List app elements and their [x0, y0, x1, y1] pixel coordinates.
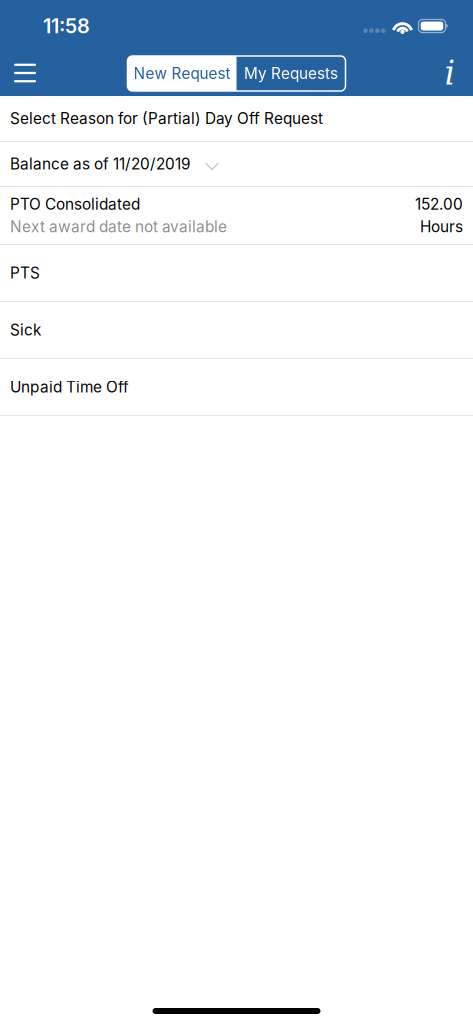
button[interactable]: Unpaid Time Off [0, 359, 473, 415]
button[interactable]: Information [428, 51, 472, 95]
button[interactable]: Select Reason for (Partial) Day Off Requ… [0, 96, 473, 141]
staticText: Balance as of 11/20/2019 [10, 155, 191, 173]
staticText: PTS [10, 264, 40, 282]
staticText: Unpaid Time Off [10, 378, 129, 396]
staticText: New Request [133, 64, 230, 83]
staticText: Next award date not available [10, 217, 227, 236]
staticText: My Requests [244, 64, 338, 83]
staticText: Select Reason for (Partial) Day Off Requ… [10, 109, 323, 128]
staticText: i [444, 54, 455, 92]
button[interactable]: My Requests [236, 56, 345, 91]
staticText: Hours [420, 217, 463, 236]
staticText: 152.00 [415, 195, 463, 213]
button[interactable]: Balance as of 11/20/2019 [0, 142, 473, 186]
button[interactable]: Sick [0, 302, 473, 358]
button[interactable]: New Request [127, 56, 236, 91]
staticText: PTO Consolidated [10, 195, 140, 213]
button[interactable]: PTS [0, 245, 473, 301]
button[interactable]: PTO Consolidated [0, 187, 473, 244]
button[interactable]: Menu [3, 51, 47, 95]
staticText: Sick [10, 321, 41, 339]
staticText: 11:58 [43, 14, 90, 38]
